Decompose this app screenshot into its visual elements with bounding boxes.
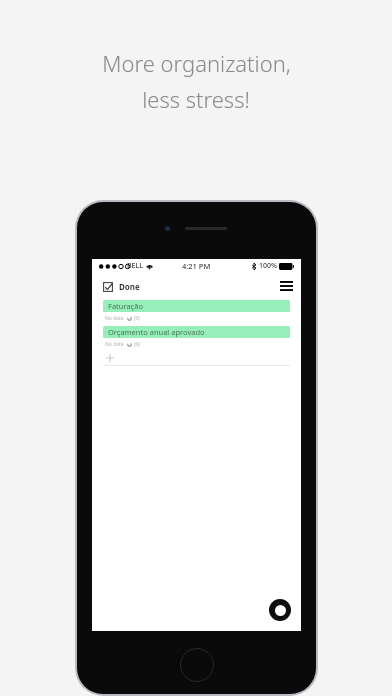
- staticText: Orçamento anual aprovado: [108, 327, 205, 337]
- staticText: less stress!: [142, 84, 250, 114]
- button[interactable]: Add task: [103, 351, 117, 365]
- button[interactable]: Orçamento anual aprovado: [103, 326, 290, 338]
- button[interactable]: Add item: [269, 599, 291, 621]
- staticText: No date: [105, 341, 124, 348]
- staticText: More organization,: [102, 48, 291, 78]
- button[interactable]: Home: [180, 648, 214, 682]
- button[interactable]: Faturação: [103, 300, 290, 312]
- staticText: Done: [119, 281, 140, 292]
- button[interactable]: Done: [103, 281, 140, 292]
- staticText: 4:21 PM: [182, 261, 211, 271]
- staticText: Faturação: [108, 301, 143, 311]
- staticText: (0): [134, 315, 140, 322]
- staticText: (0): [134, 341, 140, 348]
- staticText: No date: [105, 315, 124, 322]
- staticText: 100%: [259, 261, 277, 271]
- staticText: BELL: [127, 261, 143, 271]
- button[interactable]: Menu: [278, 278, 294, 294]
